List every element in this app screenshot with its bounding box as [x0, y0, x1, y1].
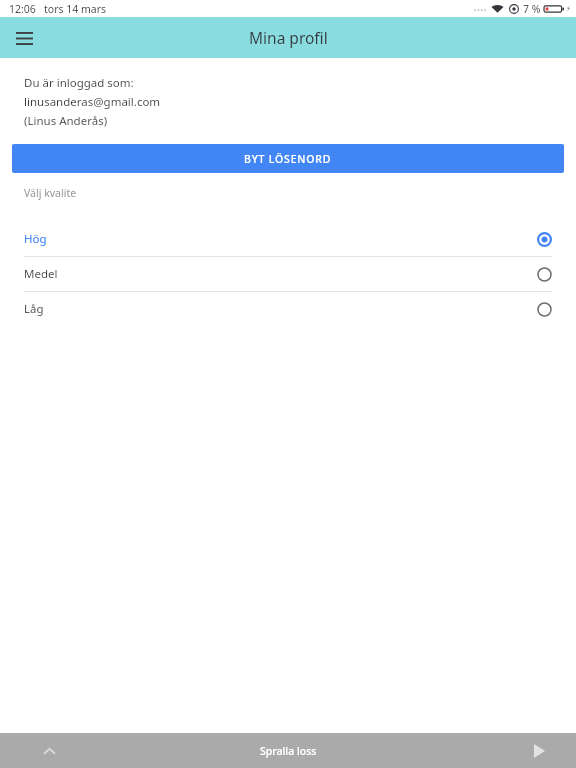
staticText: tors 14 mars — [44, 2, 107, 16]
staticText: Välj kvalite — [24, 186, 77, 200]
staticText: Spralla loss — [260, 744, 317, 758]
staticText: 7 % — [523, 2, 541, 16]
staticText: linusanderas@gmail.com — [24, 94, 161, 110]
button[interactable]: Medel — [0, 257, 576, 291]
staticText: Hög — [24, 231, 47, 247]
staticText: Låg — [24, 301, 44, 317]
button[interactable]: Låg — [0, 292, 576, 326]
button[interactable]: Hög — [0, 222, 576, 256]
staticText: Mina profil — [249, 27, 328, 48]
staticText: ⚡ — [566, 5, 571, 13]
button[interactable]: BYT LÖSENORD — [12, 144, 564, 173]
staticText: 12:06 — [9, 2, 36, 16]
button[interactable]: Expand player — [34, 736, 64, 766]
staticText: Du är inloggad som: — [24, 75, 134, 91]
staticText: BYT LÖSENORD — [244, 152, 332, 166]
staticText: Medel — [24, 266, 58, 282]
button[interactable]: Play — [524, 736, 554, 766]
button[interactable]: Open navigation menu — [6, 20, 42, 56]
staticText: (Linus Anderås) — [24, 113, 108, 129]
